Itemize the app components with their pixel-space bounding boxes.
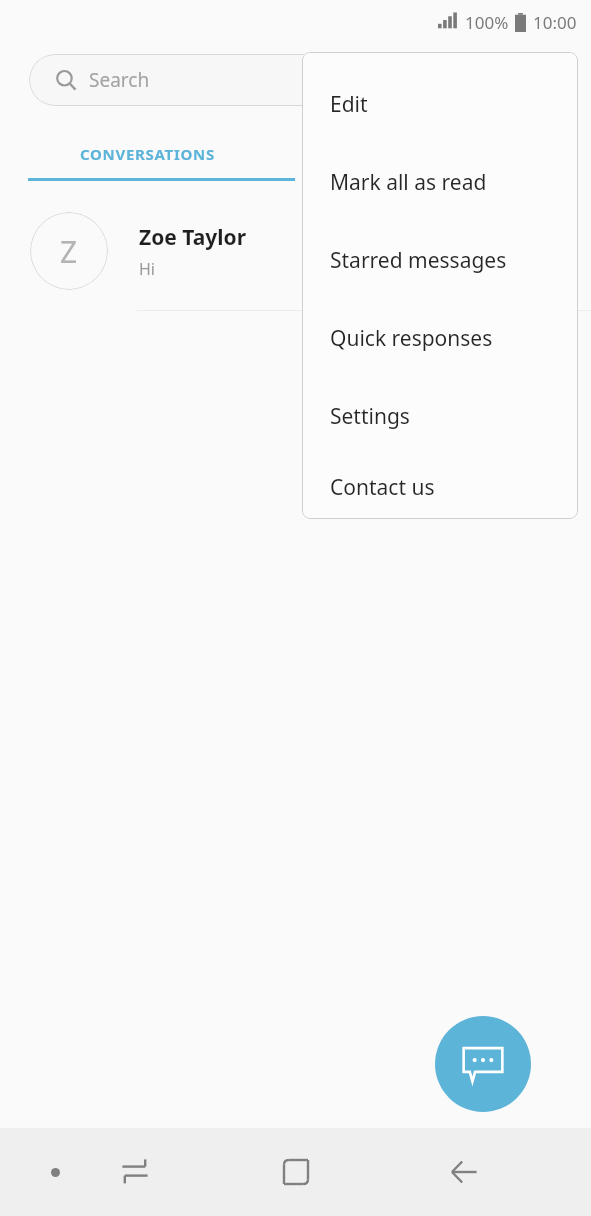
staticText: CONVERSATIONS: [80, 144, 215, 164]
staticText: Quick responses: [330, 324, 493, 353]
staticText: Starred messages: [330, 246, 507, 275]
button[interactable]: CONVERSATIONS: [0, 126, 295, 181]
staticText: Edit: [330, 90, 368, 119]
staticText: Z: [60, 231, 78, 272]
staticText: 10:00: [533, 11, 577, 34]
button[interactable]: Keyboard indicator: [18, 1128, 92, 1216]
button[interactable]: Search: [29, 54, 562, 106]
button[interactable]: Z: [0, 192, 591, 310]
button[interactable]: Back: [424, 1128, 504, 1216]
staticText: Zoe Taylor: [139, 223, 247, 252]
staticText: Hi: [139, 258, 155, 280]
staticText: 100%: [465, 11, 509, 34]
button[interactable]: Recent apps: [96, 1128, 174, 1216]
button[interactable]: Starred messages: [302, 221, 578, 299]
button[interactable]: Edit: [302, 65, 578, 143]
button[interactable]: Settings: [302, 377, 578, 455]
staticText: Contact us: [330, 473, 435, 502]
button[interactable]: Mark all as read: [302, 143, 578, 221]
button[interactable]: Contact us: [302, 455, 578, 519]
button[interactable]: Home: [254, 1128, 338, 1216]
staticText: Settings: [330, 402, 410, 431]
button[interactable]: New conversation: [435, 1016, 531, 1112]
button[interactable]: Quick responses: [302, 299, 578, 377]
staticText: Search: [89, 67, 150, 93]
staticText: Mark all as read: [330, 168, 487, 197]
